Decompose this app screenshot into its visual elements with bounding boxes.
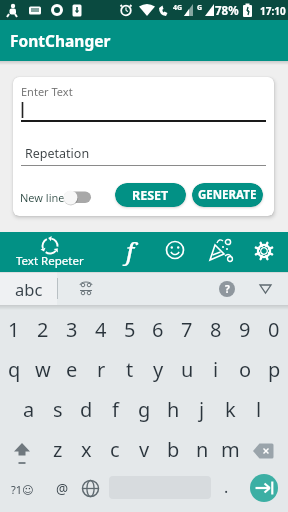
- staticText: Enter Text: [21, 84, 73, 99]
- button[interactable]: ?: [219, 281, 235, 297]
- button[interactable]: f: [110, 230, 150, 270]
- button[interactable]: 9: [231, 310, 259, 348]
- staticText: k: [225, 396, 236, 423]
- staticText: 5: [124, 316, 136, 343]
- button[interactable]: d: [72, 390, 100, 428]
- button[interactable]: p: [260, 350, 288, 388]
- staticText: l: [256, 396, 262, 423]
- staticText: o: [239, 356, 252, 383]
- button[interactable]: abc: [0, 272, 57, 305]
- staticText: v: [139, 436, 150, 463]
- staticText: RESET: [132, 187, 169, 204]
- staticText: n: [196, 436, 209, 463]
- staticText: e: [66, 356, 78, 383]
- staticText: q: [8, 356, 21, 383]
- staticText: x: [81, 436, 92, 463]
- staticText: 2: [37, 316, 49, 343]
- button[interactable]: 7: [173, 310, 201, 348]
- staticText: 9: [239, 316, 251, 343]
- button[interactable]: Text Repeter: [8, 232, 92, 272]
- button[interactable]: 1: [0, 310, 28, 348]
- staticText: r: [97, 356, 106, 383]
- button[interactable]: f: [101, 390, 129, 428]
- button[interactable]: [202, 232, 238, 272]
- staticText: ?1☺: [11, 482, 34, 497]
- staticText: New line: [20, 190, 65, 205]
- button[interactable]: [249, 439, 279, 465]
- button[interactable]: [255, 277, 277, 301]
- button[interactable]: c: [101, 430, 129, 468]
- button[interactable]: [157, 232, 193, 272]
- button[interactable]: @: [49, 476, 75, 502]
- button[interactable]: [250, 474, 278, 502]
- button[interactable]: 4: [87, 310, 115, 348]
- button[interactable]: x: [72, 430, 100, 468]
- button[interactable]: t: [116, 350, 144, 388]
- button[interactable]: GENERATE: [192, 183, 263, 207]
- staticText: m: [221, 436, 240, 463]
- button[interactable]: y: [144, 350, 172, 388]
- staticText: 3: [66, 316, 78, 343]
- button[interactable]: [7, 436, 37, 466]
- staticText: f: [126, 234, 135, 267]
- staticText: Repetation: [25, 145, 90, 162]
- button[interactable]: k: [216, 390, 244, 428]
- button[interactable]: 0: [260, 310, 288, 348]
- staticText: g: [138, 396, 151, 423]
- staticText: FontChanger: [10, 30, 111, 51]
- button[interactable]: g: [130, 390, 158, 428]
- button[interactable]: z: [44, 430, 72, 468]
- staticText: 4: [95, 316, 107, 343]
- button[interactable]: w: [29, 350, 57, 388]
- staticText: 8: [210, 316, 222, 343]
- button[interactable]: [78, 476, 103, 501]
- button[interactable]: r: [87, 350, 115, 388]
- staticText: 4G: [173, 3, 183, 13]
- button[interactable]: [245, 232, 283, 272]
- staticText: a: [23, 396, 35, 423]
- staticText: s: [53, 396, 63, 423]
- staticText: j: [199, 396, 205, 423]
- button[interactable]: 5: [116, 310, 144, 348]
- button[interactable]: New line: [20, 186, 112, 208]
- staticText: i: [213, 356, 219, 383]
- button[interactable]: i: [202, 350, 230, 388]
- staticText: Text Repeter: [16, 253, 84, 269]
- staticText: ?: [225, 282, 230, 296]
- staticText: 0: [268, 316, 280, 343]
- staticText: G: [197, 3, 203, 13]
- staticText: t: [126, 356, 134, 383]
- staticText: 78%: [215, 3, 239, 19]
- staticText: y: [153, 356, 164, 383]
- button[interactable]: h: [159, 390, 187, 428]
- staticText: @: [56, 480, 69, 498]
- button[interactable]: .: [218, 474, 234, 500]
- button[interactable]: j: [188, 390, 216, 428]
- staticText: f: [112, 396, 119, 423]
- button[interactable]: q: [0, 350, 28, 388]
- staticText: u: [181, 356, 194, 383]
- button[interactable]: s: [44, 390, 72, 428]
- staticText: c: [110, 436, 120, 463]
- button[interactable]: 8: [202, 310, 230, 348]
- button[interactable]: b: [159, 430, 187, 468]
- button[interactable]: RESET: [115, 183, 186, 207]
- button[interactable]: ?1☺: [2, 476, 42, 502]
- button[interactable]: l: [245, 390, 273, 428]
- staticText: abc: [15, 278, 43, 300]
- button[interactable]: o: [231, 350, 259, 388]
- button[interactable]: m: [216, 430, 244, 468]
- button[interactable]: v: [130, 430, 158, 468]
- button[interactable]: a: [15, 390, 43, 428]
- staticText: b: [167, 436, 180, 463]
- button[interactable]: 2: [29, 310, 57, 348]
- staticText: 7: [181, 316, 193, 343]
- button[interactable]: u: [173, 350, 201, 388]
- button[interactable]: 3: [58, 310, 86, 348]
- button[interactable]: e: [58, 350, 86, 388]
- staticText: 1: [8, 316, 20, 343]
- button[interactable]: n: [188, 430, 216, 468]
- button[interactable]: 6: [144, 310, 172, 348]
- staticText: 17:10: [260, 4, 286, 18]
